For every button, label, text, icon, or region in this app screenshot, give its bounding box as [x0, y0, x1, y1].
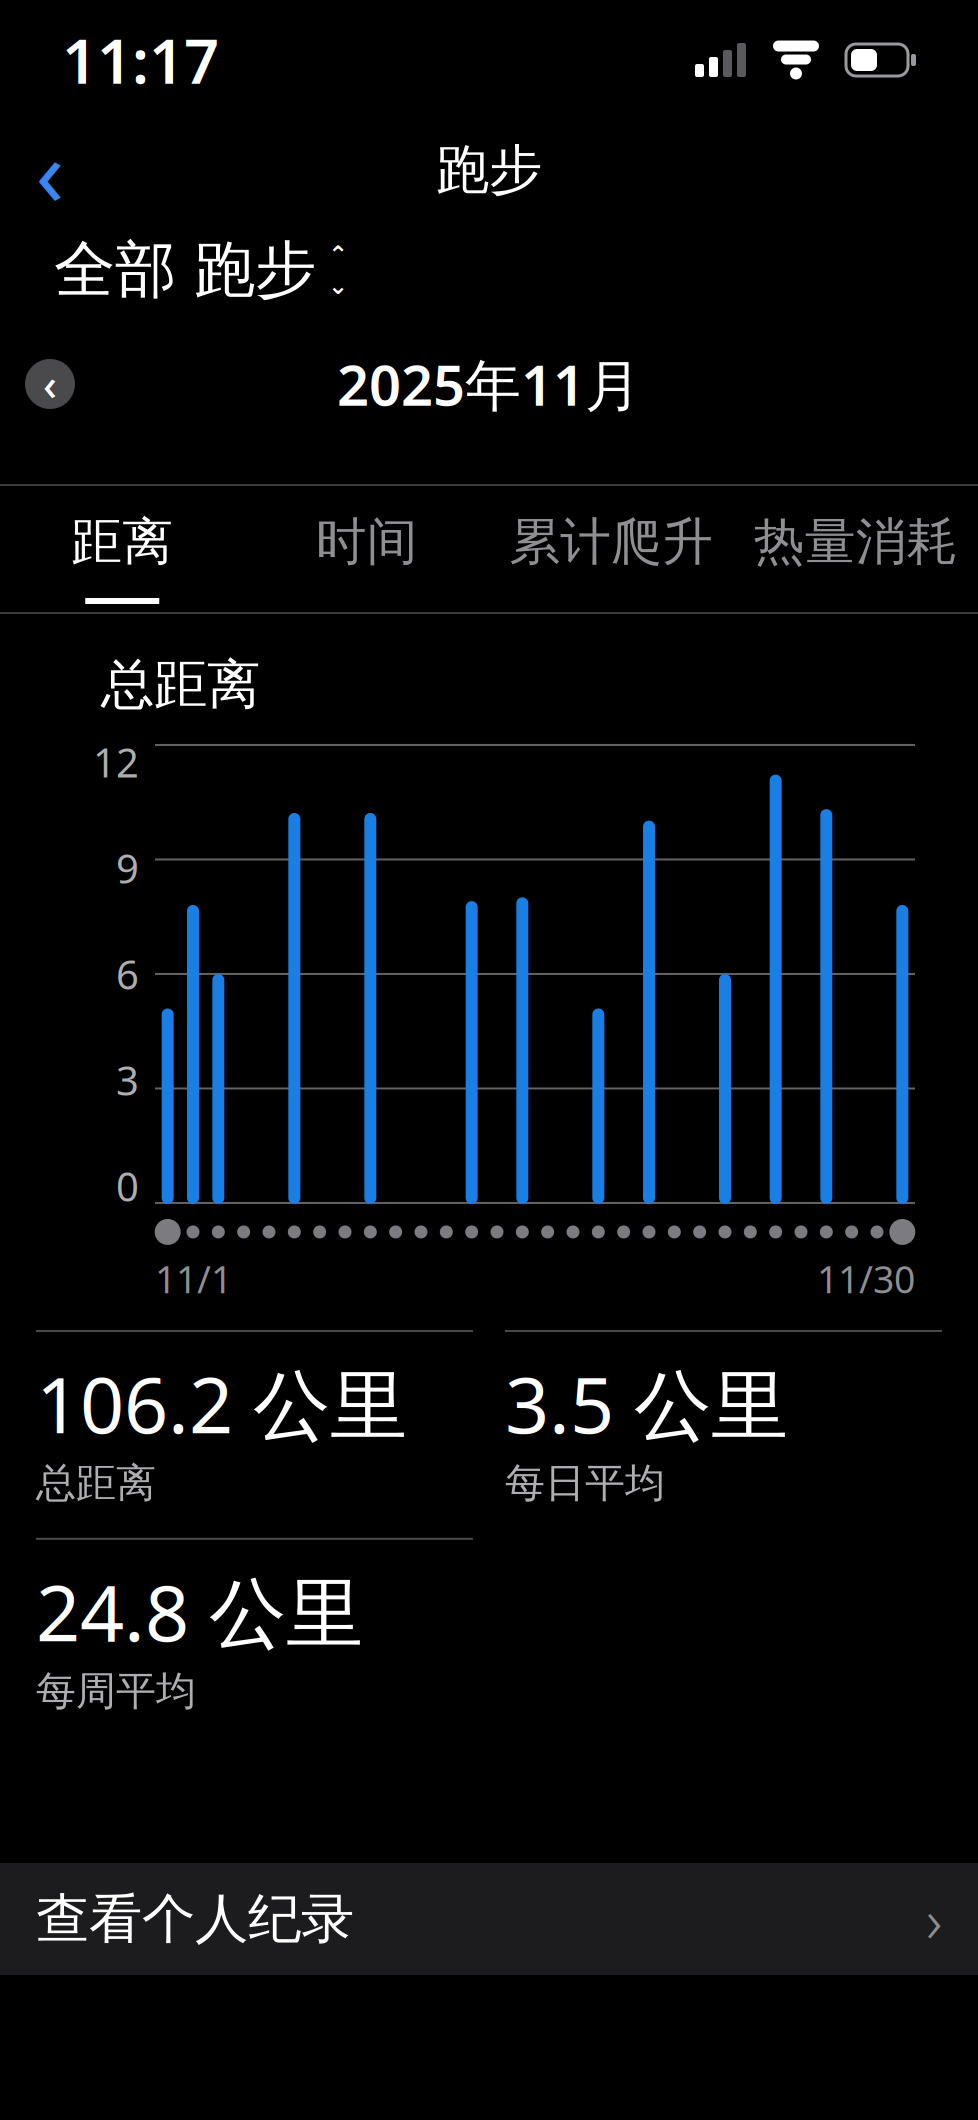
- staticText: 3: [116, 1053, 139, 1106]
- button[interactable]: 全部 跑步: [54, 224, 348, 316]
- staticText: ‹: [35, 108, 64, 232]
- staticText: 6: [116, 947, 139, 1000]
- staticText: 总距离: [36, 1459, 156, 1508]
- staticText: 热量消耗: [754, 511, 958, 573]
- staticText: 3.5 公里: [505, 1352, 788, 1455]
- staticText: 24.8 公里: [36, 1560, 363, 1662]
- staticText: ⌃: [328, 241, 348, 268]
- button[interactable]: 热量消耗: [733, 486, 978, 612]
- staticText: 全部 跑步: [54, 232, 316, 308]
- button[interactable]: 返回: [12, 132, 88, 208]
- staticText: 11:17: [62, 19, 219, 101]
- staticText: 累计爬升: [509, 511, 713, 573]
- staticText: 12: [93, 735, 139, 788]
- staticText: 106.2 公里: [36, 1352, 407, 1455]
- button[interactable]: 查看个人纪录: [0, 1863, 978, 1975]
- staticText: 0: [116, 1159, 139, 1212]
- staticText: 跑步: [436, 137, 542, 203]
- button[interactable]: 累计爬升: [489, 486, 733, 612]
- button[interactable]: 距离: [0, 486, 244, 612]
- staticText: ‹: [43, 356, 57, 412]
- staticText: 距离: [71, 511, 173, 573]
- staticText: ⌄: [328, 272, 348, 299]
- staticText: 11/1: [155, 1254, 232, 1304]
- staticText: 总距离: [101, 652, 260, 717]
- staticText: ›: [926, 1878, 942, 1960]
- staticText: 2025年11月: [337, 347, 641, 421]
- staticText: 查看个人纪录: [36, 1886, 354, 1952]
- staticText: 每日平均: [505, 1459, 665, 1508]
- staticText: 11/30: [817, 1254, 915, 1304]
- button[interactable]: 时间: [244, 486, 489, 612]
- staticText: 每周平均: [36, 1666, 196, 1716]
- staticText: 时间: [316, 511, 418, 573]
- staticText: 9: [116, 841, 139, 894]
- button[interactable]: 上一个月: [25, 356, 75, 412]
